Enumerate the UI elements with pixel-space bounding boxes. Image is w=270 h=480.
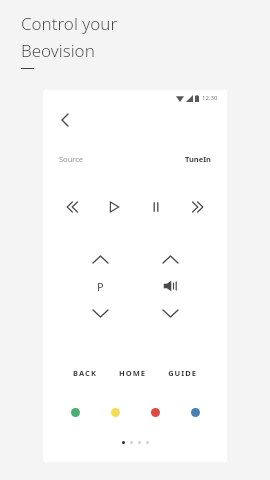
button[interactable]: Previous: [59, 194, 85, 220]
staticText: 12.30: [202, 94, 218, 102]
button[interactable]: Back: [54, 109, 76, 131]
button[interactable]: BACK: [71, 365, 99, 381]
button[interactable]: Program up: [87, 250, 113, 268]
button[interactable]: Red: [146, 403, 164, 421]
button[interactable]: Mute: [157, 276, 183, 296]
staticText: Beovision: [21, 39, 95, 62]
button[interactable]: Volume up: [157, 250, 183, 268]
staticText: Source: [59, 154, 84, 164]
button[interactable]: Blue: [186, 403, 204, 421]
staticText: Control your: [21, 12, 118, 35]
staticText: HOME: [119, 368, 146, 378]
button[interactable]: Volume down: [157, 304, 183, 322]
button[interactable]: Pause: [143, 194, 169, 220]
staticText: P: [97, 279, 104, 294]
button[interactable]: Play: [101, 194, 127, 220]
button[interactable]: Yellow: [106, 403, 124, 421]
button[interactable]: GUIDE: [166, 365, 199, 381]
button[interactable]: Next: [185, 194, 211, 220]
button[interactable]: Green: [66, 403, 84, 421]
staticText: BACK: [73, 368, 97, 378]
button[interactable]: HOME: [117, 365, 148, 381]
staticText: GUIDE: [168, 368, 197, 378]
button[interactable]: Program: [87, 276, 113, 296]
button[interactable]: Program down: [87, 304, 113, 322]
button[interactable]: Source: [59, 154, 211, 164]
staticText: TuneIn: [185, 154, 211, 164]
